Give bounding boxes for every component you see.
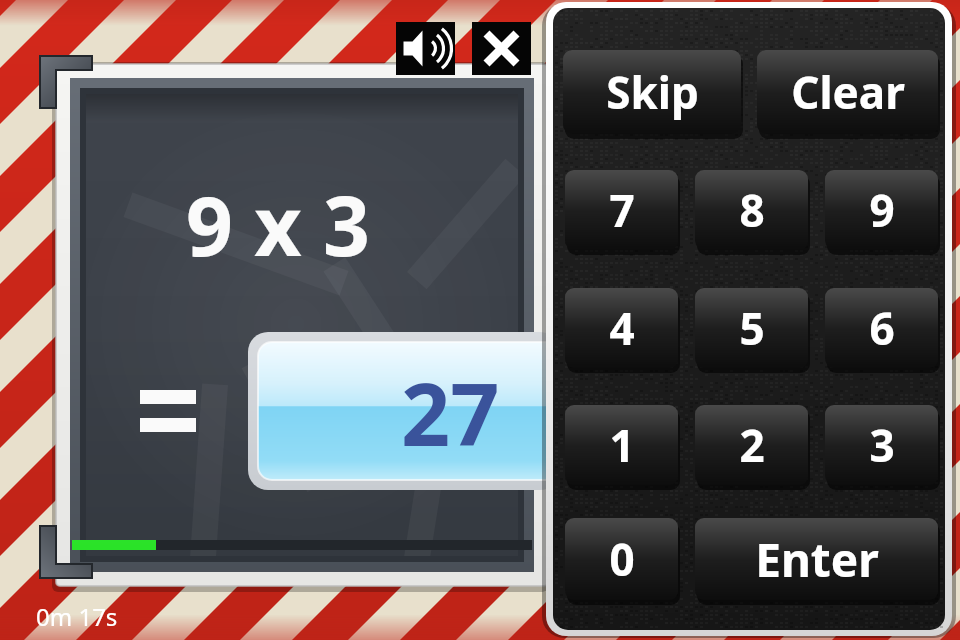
staticText: Clear: [791, 62, 905, 122]
button[interactable]: Skip: [563, 50, 741, 134]
staticText: 7: [609, 180, 635, 240]
staticText: Enter: [755, 528, 879, 591]
staticText: Skip: [606, 62, 699, 122]
button[interactable]: 4: [565, 288, 678, 368]
button[interactable]: Sound: [396, 22, 455, 75]
staticText: 3: [869, 415, 895, 475]
staticText: 0m 17s: [36, 600, 118, 633]
button[interactable]: 6: [825, 288, 938, 368]
button[interactable]: Close: [472, 22, 531, 75]
staticText: 9 x 3: [186, 168, 370, 264]
staticText: 5: [739, 298, 765, 358]
staticText: 9: [869, 180, 895, 240]
button[interactable]: 9: [825, 170, 938, 250]
staticText: 0: [609, 529, 635, 589]
button[interactable]: Clear: [757, 50, 938, 134]
staticText: 4: [609, 298, 635, 358]
button[interactable]: 7: [565, 170, 678, 250]
button[interactable]: 0: [565, 518, 678, 600]
staticText: 27: [401, 354, 500, 471]
staticText: 8: [739, 180, 765, 240]
button[interactable]: 3: [825, 405, 938, 485]
staticText: 1: [609, 415, 635, 475]
staticText: 2: [739, 415, 765, 475]
button[interactable]: 8: [695, 170, 808, 250]
button[interactable]: 1: [565, 405, 678, 485]
staticText: 6: [869, 298, 895, 358]
button[interactable]: Enter: [695, 518, 938, 600]
button[interactable]: 2: [695, 405, 808, 485]
button[interactable]: 5: [695, 288, 808, 368]
